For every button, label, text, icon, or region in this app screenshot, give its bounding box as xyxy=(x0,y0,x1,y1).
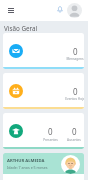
button[interactable]: 0 xyxy=(3,33,84,69)
staticText: 0 xyxy=(72,126,77,137)
button[interactable]: Notifications xyxy=(54,4,65,15)
staticText: Visão Geral xyxy=(4,24,38,33)
staticText: ARTHUR ALMEIDA xyxy=(7,158,45,164)
button[interactable]: ARTHUR ALMEIDA xyxy=(3,153,84,174)
staticText: Idade: 7 anos e 5 meses xyxy=(7,165,48,170)
button[interactable]: Profile xyxy=(67,3,82,18)
staticText: 0 xyxy=(73,46,78,57)
staticText: Mensagens xyxy=(66,57,84,61)
button[interactable]: Menu xyxy=(5,5,16,16)
button[interactable]: 0 xyxy=(3,113,84,149)
staticText: Eventos Hoje xyxy=(65,97,84,101)
staticText: 0 xyxy=(48,126,53,137)
button[interactable]: 0 xyxy=(3,73,84,109)
staticText: Presentes xyxy=(43,138,58,142)
staticText: 0 xyxy=(73,86,78,97)
staticText: Ausentes xyxy=(67,138,81,142)
